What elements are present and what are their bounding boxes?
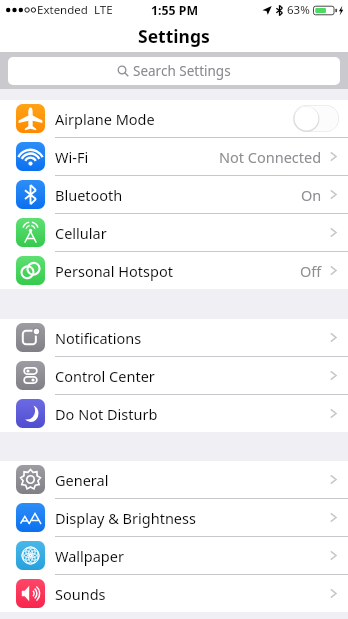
staticText: Do Not Disturb	[55, 404, 158, 424]
staticText: Sounds	[55, 584, 106, 604]
button[interactable]: Wi-Fi	[0, 138, 348, 175]
staticText: Bluetooth	[55, 185, 123, 205]
button[interactable]: Search Settings	[8, 57, 340, 85]
staticText: Wi-Fi	[55, 147, 89, 167]
button[interactable]: Airplane Mode	[0, 100, 348, 137]
staticText: LTE	[94, 2, 113, 18]
staticText: On	[301, 185, 322, 205]
staticText: 1:55 PM	[151, 2, 198, 19]
staticText: Off	[300, 261, 322, 281]
button[interactable]: Notifications	[0, 319, 348, 356]
button[interactable]: Airplane Mode toggle, off	[293, 105, 339, 132]
button[interactable]: Wallpaper	[0, 537, 348, 574]
button[interactable]: Display & Brightness	[0, 499, 348, 536]
button[interactable]: Cellular	[0, 214, 348, 251]
staticText: General	[55, 470, 109, 490]
staticText: Notifications	[55, 328, 142, 348]
button[interactable]: Personal Hotspot	[0, 252, 348, 289]
button[interactable]: Sounds	[0, 575, 348, 612]
button[interactable]: Control Center	[0, 357, 348, 394]
staticText: Settings	[138, 24, 210, 48]
button[interactable]: General	[0, 461, 348, 498]
staticText: Personal Hotspot	[55, 261, 173, 281]
button[interactable]: Do Not Disturb	[0, 395, 348, 432]
staticText: Wallpaper	[55, 546, 124, 566]
staticText: Display & Brightness	[55, 508, 196, 528]
staticText: Airplane Mode	[55, 109, 155, 129]
staticText: Control Center	[55, 366, 155, 386]
staticText: Extended	[37, 2, 88, 18]
staticText: 63%	[287, 2, 310, 18]
staticText: Search Settings	[133, 62, 231, 80]
staticText: Not Connected	[219, 147, 322, 167]
staticText: Cellular	[55, 223, 107, 243]
button[interactable]: Bluetooth	[0, 176, 348, 213]
